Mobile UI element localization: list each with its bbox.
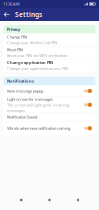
staticText: Privacy	[7, 27, 20, 32]
button[interactable]: Recents	[14, 193, 28, 207]
button[interactable]: Notification Sound	[3, 113, 95, 121]
button[interactable]: Change PIN	[3, 33, 95, 46]
staticText: Vibrate when new notification coming	[7, 126, 70, 131]
staticText: Reset your PIN via SMS verification	[7, 53, 67, 58]
button[interactable]: Back	[71, 193, 85, 207]
button[interactable]: New message popup	[3, 85, 95, 97]
staticText: Notifications	[7, 78, 34, 84]
staticText: Change PIN	[7, 34, 27, 39]
button[interactable]: Home	[42, 193, 56, 207]
staticText: Light screen for messages	[7, 97, 53, 102]
staticText: Change your Wallet Club PIN	[7, 40, 57, 45]
staticText: Reset PIN	[7, 47, 23, 52]
staticText: Change your application access PIN	[7, 66, 68, 71]
button[interactable]: Reset PIN	[3, 46, 95, 59]
button[interactable]: Vibrate when new notification coming	[3, 121, 95, 135]
staticText: Notification Sound	[7, 114, 37, 119]
staticText: New message popup	[7, 88, 43, 94]
staticText: Settings	[15, 10, 42, 19]
staticText: Change application PIN	[7, 60, 53, 65]
staticText: 11:30 AM	[3, 1, 20, 7]
button[interactable]: Light screen for messages	[3, 97, 95, 113]
button[interactable]: Change application PIN	[3, 59, 95, 72]
button[interactable]: Back	[0, 8, 15, 21]
staticText: The screen will light up for incoming me…	[7, 102, 69, 113]
